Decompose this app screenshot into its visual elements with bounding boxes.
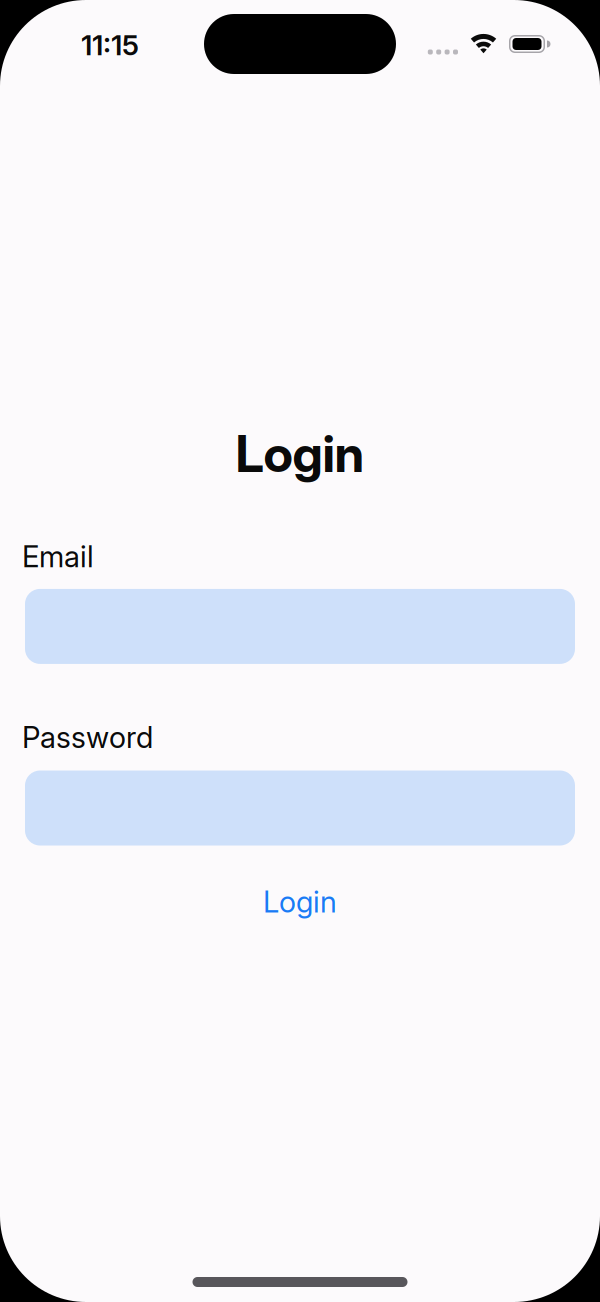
button[interactable]: Password bbox=[25, 770, 575, 845]
staticText: Password bbox=[22, 720, 153, 754]
staticText: Login bbox=[235, 423, 364, 484]
staticText: Email bbox=[22, 539, 94, 574]
button[interactable]: Email bbox=[25, 589, 575, 664]
staticText: 11:15 bbox=[81, 28, 139, 61]
staticText: Login bbox=[263, 884, 337, 919]
button[interactable]: Login bbox=[263, 884, 337, 919]
